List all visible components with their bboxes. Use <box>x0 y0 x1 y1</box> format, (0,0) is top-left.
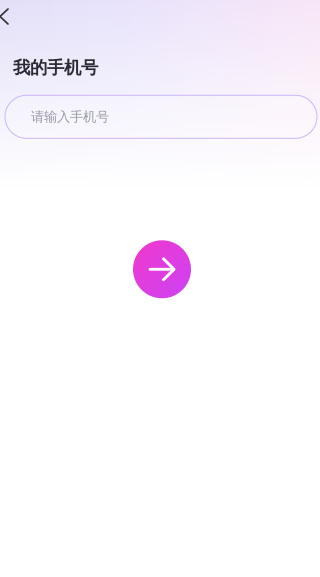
button[interactable]: 请输入手机号 <box>5 95 317 138</box>
button[interactable]: Next <box>133 240 191 298</box>
button[interactable]: Back <box>0 0 22 31</box>
staticText: 我的手机号 <box>13 57 98 78</box>
staticText: 请输入手机号 <box>31 109 109 125</box>
